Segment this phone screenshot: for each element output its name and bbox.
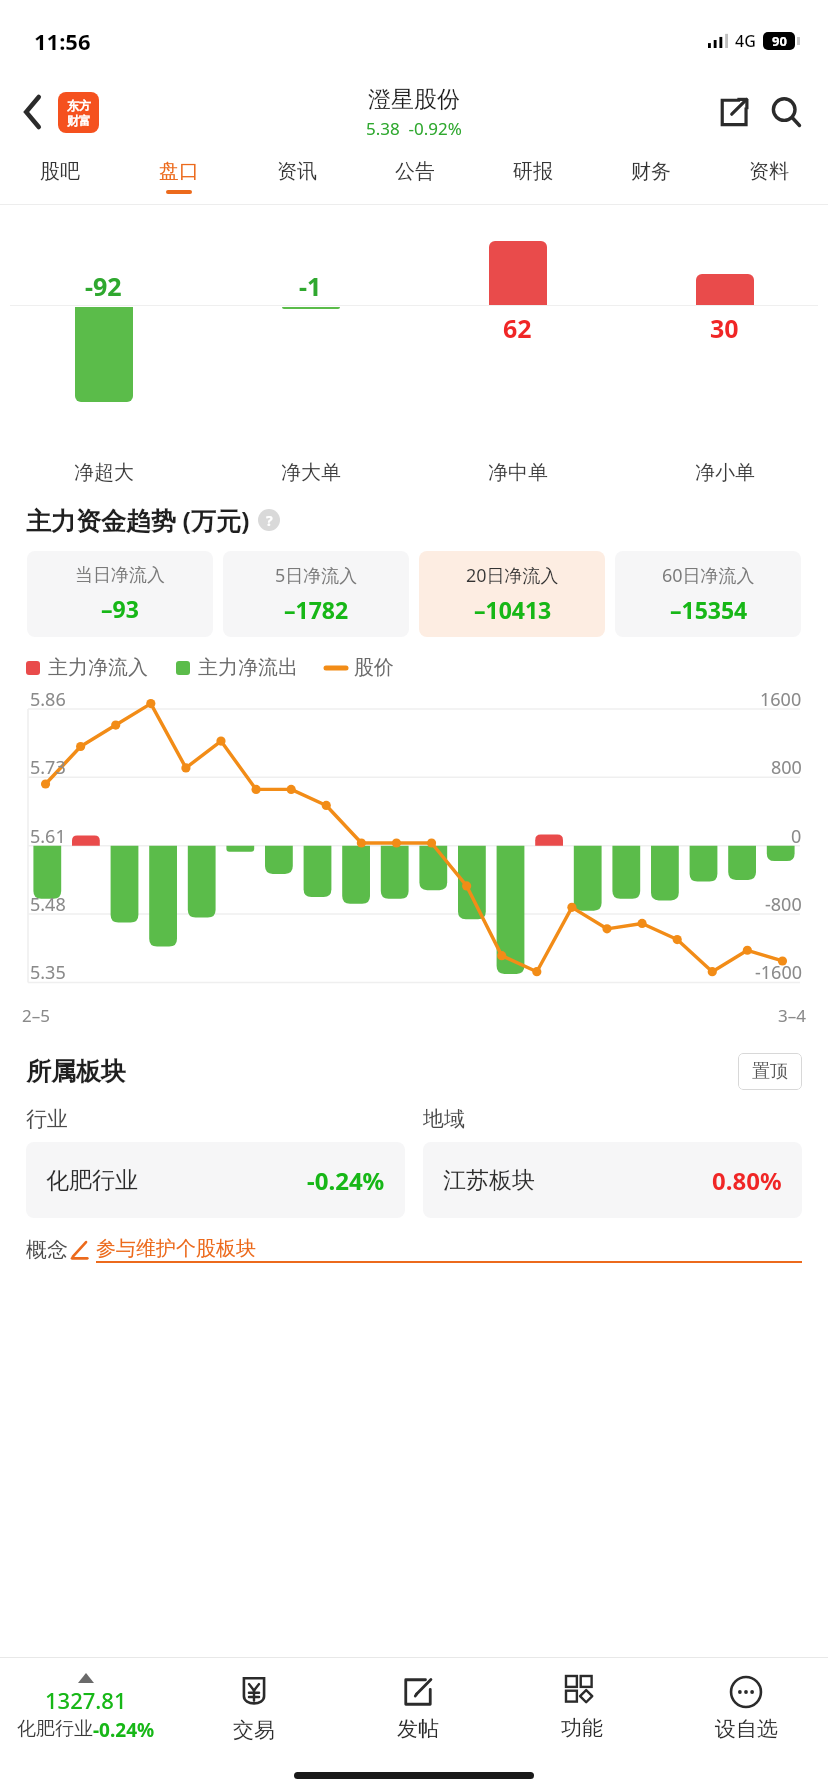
button[interactable]: -92 [0, 205, 207, 495]
staticText: 20日净流入 [466, 563, 559, 588]
staticText: 90 [772, 32, 787, 50]
staticText: 公告 [395, 159, 435, 184]
staticText: –1782 [284, 594, 349, 625]
staticText: –93 [101, 593, 139, 624]
staticText: 财务 [631, 159, 671, 184]
staticText: 研报 [513, 159, 553, 184]
staticText: 净大单 [281, 460, 341, 485]
button[interactable]: 当日净流入 [27, 551, 213, 637]
staticText: 设自选 [715, 1716, 778, 1742]
button[interactable]: 62 [414, 205, 621, 495]
staticText: -1 [299, 269, 322, 303]
staticText: 发帖 [397, 1716, 439, 1742]
staticText: 当日净流入 [75, 564, 165, 587]
staticText: -92 [85, 269, 122, 303]
staticText: 股价 [354, 655, 394, 680]
button[interactable]: 财务 [592, 148, 710, 204]
button[interactable]: 参与维护个股板块 [68, 1236, 802, 1263]
button[interactable]: 江苏板块 [423, 1142, 802, 1218]
staticText: 5.35 [30, 960, 66, 985]
staticText: 1600 [760, 687, 802, 712]
staticText: -0.24% [307, 1164, 385, 1197]
button[interactable]: 30 [621, 205, 828, 495]
button[interactable]: 设自选 [664, 1658, 828, 1758]
staticText: 5.73 [30, 755, 66, 780]
button[interactable]: East Money [58, 92, 99, 133]
staticText: 主力资金趋势 (万元) [26, 503, 250, 537]
staticText: 5.38 -0.92% [366, 117, 462, 140]
button[interactable]: 1327.81 [0, 1658, 172, 1758]
staticText: 资讯 [277, 159, 317, 184]
button[interactable]: 公告 [356, 148, 474, 204]
button[interactable]: 资料 [710, 148, 828, 204]
staticText: 盘口 [159, 159, 199, 184]
staticText: 60日净流入 [662, 563, 755, 588]
staticText: 0.80% [712, 1164, 782, 1197]
staticText: 30 [710, 311, 739, 345]
staticText: 概念 [26, 1237, 68, 1263]
staticText: 东方 [67, 98, 91, 113]
staticText: 3–4 [778, 1004, 806, 1027]
staticText: 财富 [67, 113, 91, 128]
staticText: 净中单 [488, 460, 548, 485]
staticText: 澄星股份 [368, 85, 460, 114]
staticText: 800 [771, 755, 802, 780]
staticText: 功能 [561, 1715, 603, 1741]
staticText: 净小单 [695, 460, 755, 485]
staticText: 4G [735, 30, 756, 52]
staticText: 置顶 [752, 1060, 788, 1083]
staticText: 净超大 [74, 460, 134, 485]
staticText: 资料 [749, 159, 789, 184]
staticText: 5.48 [30, 892, 66, 917]
staticText: 5日净流入 [275, 563, 358, 588]
staticText: 化肥行业 [46, 1166, 138, 1195]
button[interactable]: Search [760, 86, 812, 138]
staticText: -0.24% [93, 1717, 155, 1743]
button[interactable]: 股吧 [0, 148, 119, 204]
button[interactable]: 化肥行业 [26, 1142, 405, 1218]
staticText: 行业 [26, 1106, 68, 1132]
staticText: 62 [503, 311, 532, 345]
staticText: -800 [765, 892, 802, 917]
staticText: 1327.81 [45, 1685, 127, 1715]
button[interactable]: 5日净流入 [223, 551, 409, 637]
staticText: -1600 [755, 960, 802, 985]
button[interactable]: 交易 [172, 1658, 336, 1758]
button[interactable]: Help [258, 509, 280, 531]
staticText: 股吧 [40, 159, 80, 184]
staticText: –10413 [474, 594, 552, 625]
button[interactable]: 20日净流入 [419, 551, 605, 637]
button[interactable]: 发帖 [336, 1658, 500, 1758]
staticText: 2–5 [22, 1004, 50, 1027]
staticText: 参与维护个股板块 [96, 1236, 256, 1261]
button[interactable]: Back [10, 89, 56, 135]
staticText: 化肥行业 [17, 1717, 93, 1741]
staticText: –15354 [670, 594, 748, 625]
staticText: ? [266, 511, 273, 530]
staticText: 所属板块 [26, 1056, 126, 1087]
staticText: 江苏板块 [443, 1166, 535, 1195]
staticText: 主力净流出 [198, 655, 298, 680]
button[interactable]: 60日净流入 [615, 551, 801, 637]
button[interactable]: 研报 [474, 148, 592, 204]
staticText: 主力净流入 [48, 655, 148, 680]
button[interactable]: 资讯 [238, 148, 356, 204]
staticText: 5.86 [30, 687, 66, 712]
staticText: 5.61 [30, 824, 66, 849]
button[interactable]: -1 [207, 205, 414, 495]
staticText: 地域 [423, 1106, 465, 1132]
button[interactable]: 盘口 [119, 148, 238, 204]
staticText: 0 [791, 824, 802, 849]
button[interactable]: 功能 [500, 1658, 664, 1758]
staticText: 11:56 [34, 26, 91, 56]
staticText: 交易 [233, 1717, 275, 1743]
button[interactable]: Share [708, 86, 760, 138]
button[interactable]: 置顶 [738, 1053, 802, 1090]
